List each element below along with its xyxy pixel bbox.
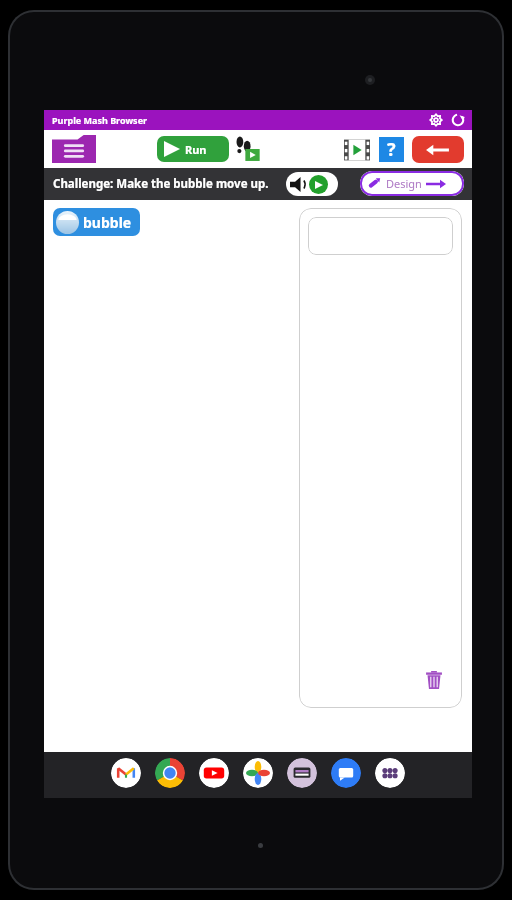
staticText: Run (185, 142, 207, 157)
button[interactable]: Play all (344, 137, 370, 163)
button[interactable]: Back (412, 136, 464, 163)
button[interactable]: Play audio (286, 172, 338, 196)
button[interactable]: Delete (416, 662, 452, 698)
staticText: bubble (83, 213, 132, 232)
staticText: Purple Mash Browser (52, 114, 148, 126)
button[interactable]: bubble (53, 208, 140, 236)
button[interactable]: YouTube (199, 758, 229, 788)
staticText: Design (386, 176, 422, 191)
staticText: Challenge: Make the bubble move up. (53, 176, 269, 192)
button[interactable]: All apps (375, 758, 405, 788)
button[interactable]: Photos (243, 758, 273, 788)
button[interactable]: Gmail (111, 758, 141, 788)
button[interactable]: Help (379, 137, 404, 162)
staticText: ? (387, 137, 396, 162)
button[interactable]: Run (157, 136, 229, 162)
button[interactable]: Files (287, 758, 317, 788)
button[interactable]: Menu (52, 135, 96, 163)
button[interactable]: Messages (331, 758, 361, 788)
button[interactable]: Chrome (155, 758, 185, 788)
button[interactable]: Step (236, 136, 262, 162)
button[interactable]: Refresh (450, 112, 466, 128)
button[interactable] (308, 217, 453, 255)
button[interactable]: Settings (428, 112, 444, 128)
button[interactable]: Design (360, 171, 464, 196)
